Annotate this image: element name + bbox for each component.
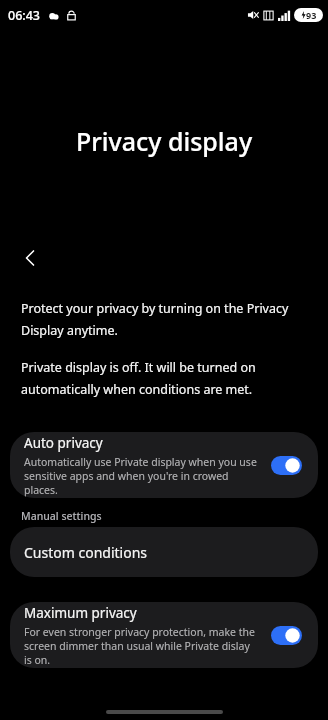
- staticText: Private display is off. It will be turne…: [21, 359, 307, 398]
- button[interactable]: Maximum privacy: [10, 602, 318, 668]
- staticText: Maximum privacy: [24, 604, 137, 622]
- staticText: 93: [306, 9, 317, 21]
- button[interactable]: Custom conditions: [10, 527, 318, 577]
- staticText: Automatically use Private display when y…: [24, 455, 257, 469]
- staticText: Protect your privacy by turning on the P…: [21, 300, 307, 339]
- staticText: screen dimmer than usual while Private d…: [24, 639, 260, 667]
- staticText: Auto privacy: [24, 434, 103, 452]
- staticText: sensitive apps and when you're in crowed…: [24, 469, 260, 497]
- staticText: Manual settings: [21, 509, 102, 523]
- button[interactable]: Back: [10, 238, 50, 278]
- staticText: Privacy display: [0, 124, 328, 158]
- button[interactable]: Toggle Auto privacy: [271, 456, 302, 475]
- staticText: For even stronger privacy protection, ma…: [24, 625, 255, 639]
- button[interactable]: Toggle Maximum privacy: [271, 626, 302, 645]
- staticText: Custom conditions: [24, 543, 148, 562]
- button[interactable]: Auto privacy: [10, 432, 318, 498]
- staticText: 06:43: [8, 7, 41, 24]
